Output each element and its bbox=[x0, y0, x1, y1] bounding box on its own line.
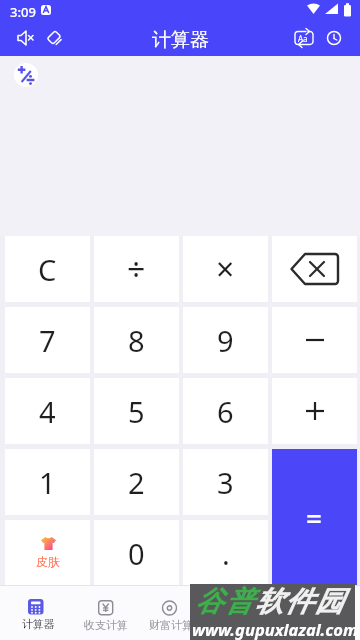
staticText: 计算器 bbox=[152, 28, 209, 52]
staticText: 5 bbox=[128, 392, 145, 431]
staticText: 3 bbox=[217, 463, 234, 502]
button[interactable]: 计算器 bbox=[10, 588, 66, 638]
button[interactable]: 2 bbox=[94, 449, 179, 515]
staticText: 7 bbox=[39, 321, 56, 360]
button[interactable]: 5 bbox=[94, 378, 179, 444]
button[interactable] bbox=[10, 26, 38, 54]
staticText: . bbox=[222, 534, 230, 573]
button[interactable]: = bbox=[272, 449, 357, 586]
staticText: 皮肤 bbox=[36, 554, 60, 569]
staticText: Aa bbox=[298, 33, 308, 44]
staticText: 谷普 bbox=[194, 584, 254, 619]
button[interactable]: 9 bbox=[183, 307, 268, 373]
button[interactable] bbox=[272, 236, 357, 302]
button[interactable] bbox=[272, 378, 357, 444]
staticText: www.gupuxlazal.com bbox=[192, 618, 358, 640]
button[interactable]: 财富计算 bbox=[143, 588, 199, 638]
staticText: 4 bbox=[39, 392, 56, 431]
staticText: 0 bbox=[128, 534, 145, 573]
button[interactable]: 8 bbox=[94, 307, 179, 373]
staticText: 计算器 bbox=[22, 617, 55, 631]
button[interactable]: 7 bbox=[5, 307, 90, 373]
staticText: 1 bbox=[39, 463, 56, 502]
button[interactable]: Aa bbox=[290, 26, 318, 54]
staticText: 2 bbox=[128, 463, 145, 502]
button[interactable]: 0 bbox=[94, 520, 179, 586]
button[interactable]: 6 bbox=[183, 378, 268, 444]
button[interactable] bbox=[14, 63, 38, 87]
staticText: ÷ bbox=[127, 247, 146, 291]
button[interactable]: × bbox=[183, 236, 268, 302]
button[interactable]: 4 bbox=[5, 378, 90, 444]
button[interactable]: C bbox=[5, 236, 90, 302]
staticText: 8 bbox=[128, 321, 145, 360]
button[interactable] bbox=[321, 26, 347, 52]
button[interactable]: . bbox=[183, 520, 268, 586]
staticText: C bbox=[38, 250, 57, 289]
button[interactable] bbox=[40, 26, 68, 54]
staticText: 6 bbox=[217, 392, 234, 431]
button[interactable]: 3 bbox=[183, 449, 268, 515]
button[interactable]: 收支计算 bbox=[78, 588, 134, 638]
staticText: 3:09 bbox=[10, 3, 36, 21]
staticText: × bbox=[216, 247, 235, 291]
staticText: 财富计算 bbox=[149, 618, 193, 632]
staticText: 收支计算 bbox=[84, 618, 128, 632]
button[interactable] bbox=[272, 307, 357, 373]
button[interactable]: 皮肤 bbox=[5, 520, 90, 586]
staticText: 软件园 bbox=[254, 584, 344, 619]
button[interactable]: 1 bbox=[5, 449, 90, 515]
staticText: = bbox=[306, 499, 323, 537]
button[interactable]: ÷ bbox=[94, 236, 179, 302]
staticText: 9 bbox=[217, 321, 234, 360]
